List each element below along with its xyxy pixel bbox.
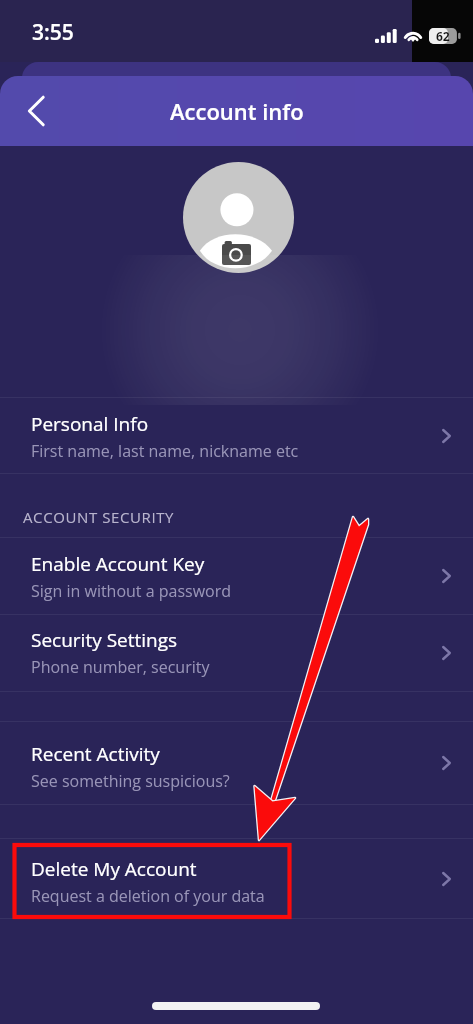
- staticText: 3:55: [32, 18, 74, 47]
- staticText: Recent Activity: [31, 741, 160, 767]
- button[interactable]: Enable Account Key: [0, 538, 473, 614]
- button[interactable]: Recent Activity: [0, 722, 473, 804]
- staticText: Personal Info: [31, 411, 149, 437]
- button[interactable]: Security Settings: [0, 615, 473, 691]
- staticText: See something suspicious?: [31, 770, 230, 792]
- button[interactable]: Delete My Account: [0, 839, 473, 918]
- staticText: Account info: [170, 96, 304, 126]
- staticText: Security Settings: [31, 627, 178, 653]
- staticText: Delete My Account: [31, 856, 197, 882]
- button[interactable]: Change profile photo: [183, 162, 294, 273]
- staticText: ACCOUNT SECURITY: [23, 507, 175, 527]
- button[interactable]: Back: [12, 87, 60, 135]
- staticText: Request a deletion of your data: [31, 885, 265, 907]
- staticText: First name, last name, nickname etc: [31, 440, 299, 462]
- staticText: Enable Account Key: [31, 551, 205, 577]
- staticText: 62: [436, 28, 450, 44]
- button[interactable]: Personal Info: [0, 398, 473, 473]
- staticText: Phone number, security: [31, 656, 210, 678]
- staticText: Sign in without a password: [31, 580, 232, 602]
